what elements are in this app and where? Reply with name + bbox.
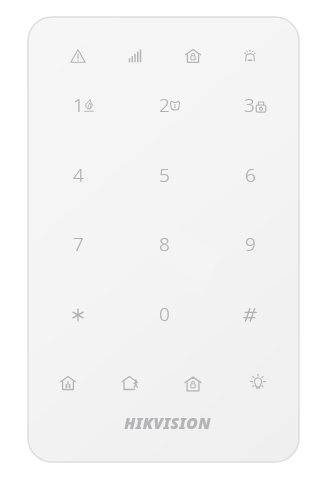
staticText: 0: [159, 301, 170, 327]
button[interactable]: 8: [143, 230, 185, 258]
button[interactable]: Light: [245, 370, 271, 396]
button[interactable]: Medical alarm: [162, 93, 188, 119]
button[interactable]: Fault warning: [65, 43, 91, 69]
button[interactable]: Star: [65, 302, 91, 328]
button[interactable]: Disarm: [180, 371, 206, 397]
button[interactable]: 1: [57, 91, 99, 119]
button[interactable]: 9: [229, 230, 271, 258]
staticText: 9: [245, 231, 256, 257]
button[interactable]: 7: [57, 230, 99, 258]
button[interactable]: Fire alarm: [76, 92, 102, 118]
button[interactable]: 0: [143, 300, 185, 328]
button[interactable]: Armed: [180, 43, 206, 69]
staticText: 3: [244, 92, 255, 118]
button[interactable]: Signal strength: [122, 43, 148, 69]
staticText: 8: [159, 231, 170, 257]
staticText: 5: [159, 162, 170, 188]
staticText: 1: [73, 92, 84, 118]
button[interactable]: 2: [143, 91, 185, 119]
button[interactable]: 6: [229, 161, 271, 189]
button[interactable]: 5: [143, 161, 185, 189]
button[interactable]: 3: [228, 91, 270, 119]
staticText: 6: [245, 162, 256, 188]
button[interactable]: 4: [57, 161, 99, 189]
staticText: 2: [159, 92, 170, 118]
staticText: 4: [73, 162, 84, 188]
button[interactable]: Hash: [237, 302, 263, 328]
button[interactable]: Away arm: [118, 370, 144, 396]
staticText: 7: [73, 231, 84, 257]
button[interactable]: Panic alarm: [248, 93, 274, 119]
staticText: HIKVISION: [124, 412, 211, 430]
button[interactable]: Alarm: [237, 43, 263, 69]
button[interactable]: Stay arm: [55, 370, 81, 396]
